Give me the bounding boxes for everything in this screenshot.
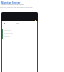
staticText: Monitor Server bbox=[1, 1, 21, 5]
staticText: Monitor Windows Server metrics bbox=[1, 3, 24, 5]
staticText: Track CPU, memory, disk and network in o… bbox=[0, 7, 33, 9]
